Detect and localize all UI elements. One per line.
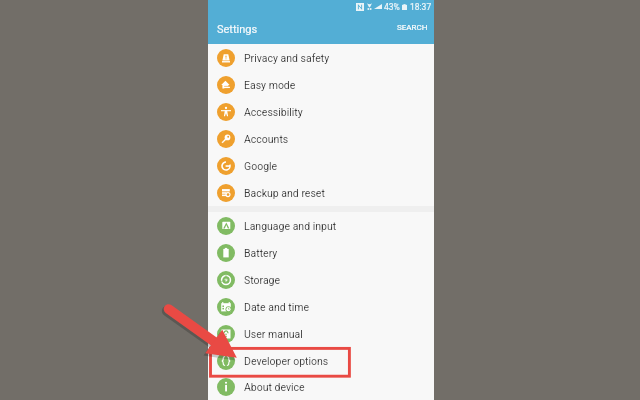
- staticText: About device: [244, 381, 305, 393]
- staticText: Accounts: [244, 133, 289, 145]
- button[interactable]: SEARCH: [390, 19, 435, 36]
- button[interactable]: Language and input: [208, 212, 434, 239]
- button[interactable]: Google: [208, 152, 434, 179]
- staticText: Date and time: [244, 301, 310, 313]
- button[interactable]: Storage: [208, 266, 434, 293]
- button[interactable]: Privacy and safety: [208, 44, 434, 71]
- staticText: Language and input: [244, 220, 337, 232]
- button[interactable]: Developer options: [208, 347, 434, 374]
- staticText: Privacy and safety: [244, 52, 330, 64]
- staticText: Backup and reset: [244, 187, 325, 199]
- staticText: Settings: [217, 23, 258, 36]
- staticText: 18:37: [410, 2, 432, 12]
- button[interactable]: Backup and reset: [208, 179, 434, 206]
- staticText: Storage: [244, 274, 281, 286]
- staticText: 43%: [384, 2, 400, 12]
- button[interactable]: About device: [208, 374, 434, 400]
- staticText: Google: [244, 160, 278, 172]
- button[interactable]: Battery: [208, 239, 434, 266]
- staticText: Battery: [244, 247, 278, 259]
- staticText: Developer options: [244, 355, 329, 367]
- button[interactable]: Date and time: [208, 293, 434, 320]
- staticText: SEARCH: [397, 23, 428, 32]
- button[interactable]: Accounts: [208, 125, 434, 152]
- staticText: Accessibility: [244, 106, 303, 118]
- button[interactable]: Easy mode: [208, 71, 434, 98]
- staticText: User manual: [244, 328, 303, 340]
- staticText: Easy mode: [244, 79, 296, 91]
- button[interactable]: User manual: [208, 320, 434, 347]
- button[interactable]: Accessibility: [208, 98, 434, 125]
